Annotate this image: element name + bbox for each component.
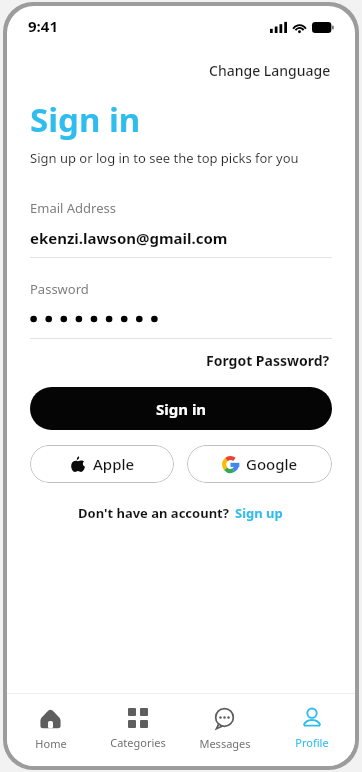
- staticText: Sign up: [235, 504, 283, 522]
- button[interactable]: Home: [7, 694, 94, 766]
- staticText: Forgot Password?: [206, 351, 330, 370]
- staticText: Categories: [110, 735, 166, 750]
- button[interactable]: Google: [187, 445, 332, 483]
- staticText: ekenzi.lawson@gmail.com: [30, 228, 228, 248]
- other: Categories: [128, 708, 148, 728]
- button[interactable]: Messages: [181, 694, 268, 766]
- staticText: Profile: [295, 735, 329, 750]
- button[interactable]: Sign in: [30, 387, 332, 430]
- button[interactable]: Profile: [268, 694, 355, 766]
- staticText: Email Address: [30, 199, 116, 217]
- other: Messages: [214, 708, 235, 729]
- button[interactable]: Email Address: [30, 199, 332, 258]
- staticText: Home: [35, 736, 67, 751]
- button[interactable]: Apple: [30, 445, 174, 483]
- staticText: Password: [30, 280, 89, 298]
- staticText: Google: [246, 454, 298, 474]
- staticText: Sign in: [156, 399, 207, 419]
- staticText: Messages: [199, 736, 251, 751]
- other: Home: [40, 708, 61, 729]
- other: Profile: [302, 708, 322, 728]
- staticText: Don't have an account?: [78, 504, 229, 522]
- staticText: Sign in: [30, 97, 141, 142]
- staticText: Change Language: [209, 61, 331, 80]
- staticText: Sign up or log in to see the top picks f…: [30, 149, 299, 167]
- button[interactable]: Password: [30, 280, 332, 339]
- button[interactable]: Forgot Password?: [204, 348, 332, 373]
- button[interactable]: Change Language: [207, 58, 333, 83]
- staticText: 9:41: [28, 16, 58, 36]
- button[interactable]: Categories: [94, 694, 181, 766]
- staticText: Apple: [93, 454, 135, 474]
- button[interactable]: Sign up: [234, 502, 284, 524]
